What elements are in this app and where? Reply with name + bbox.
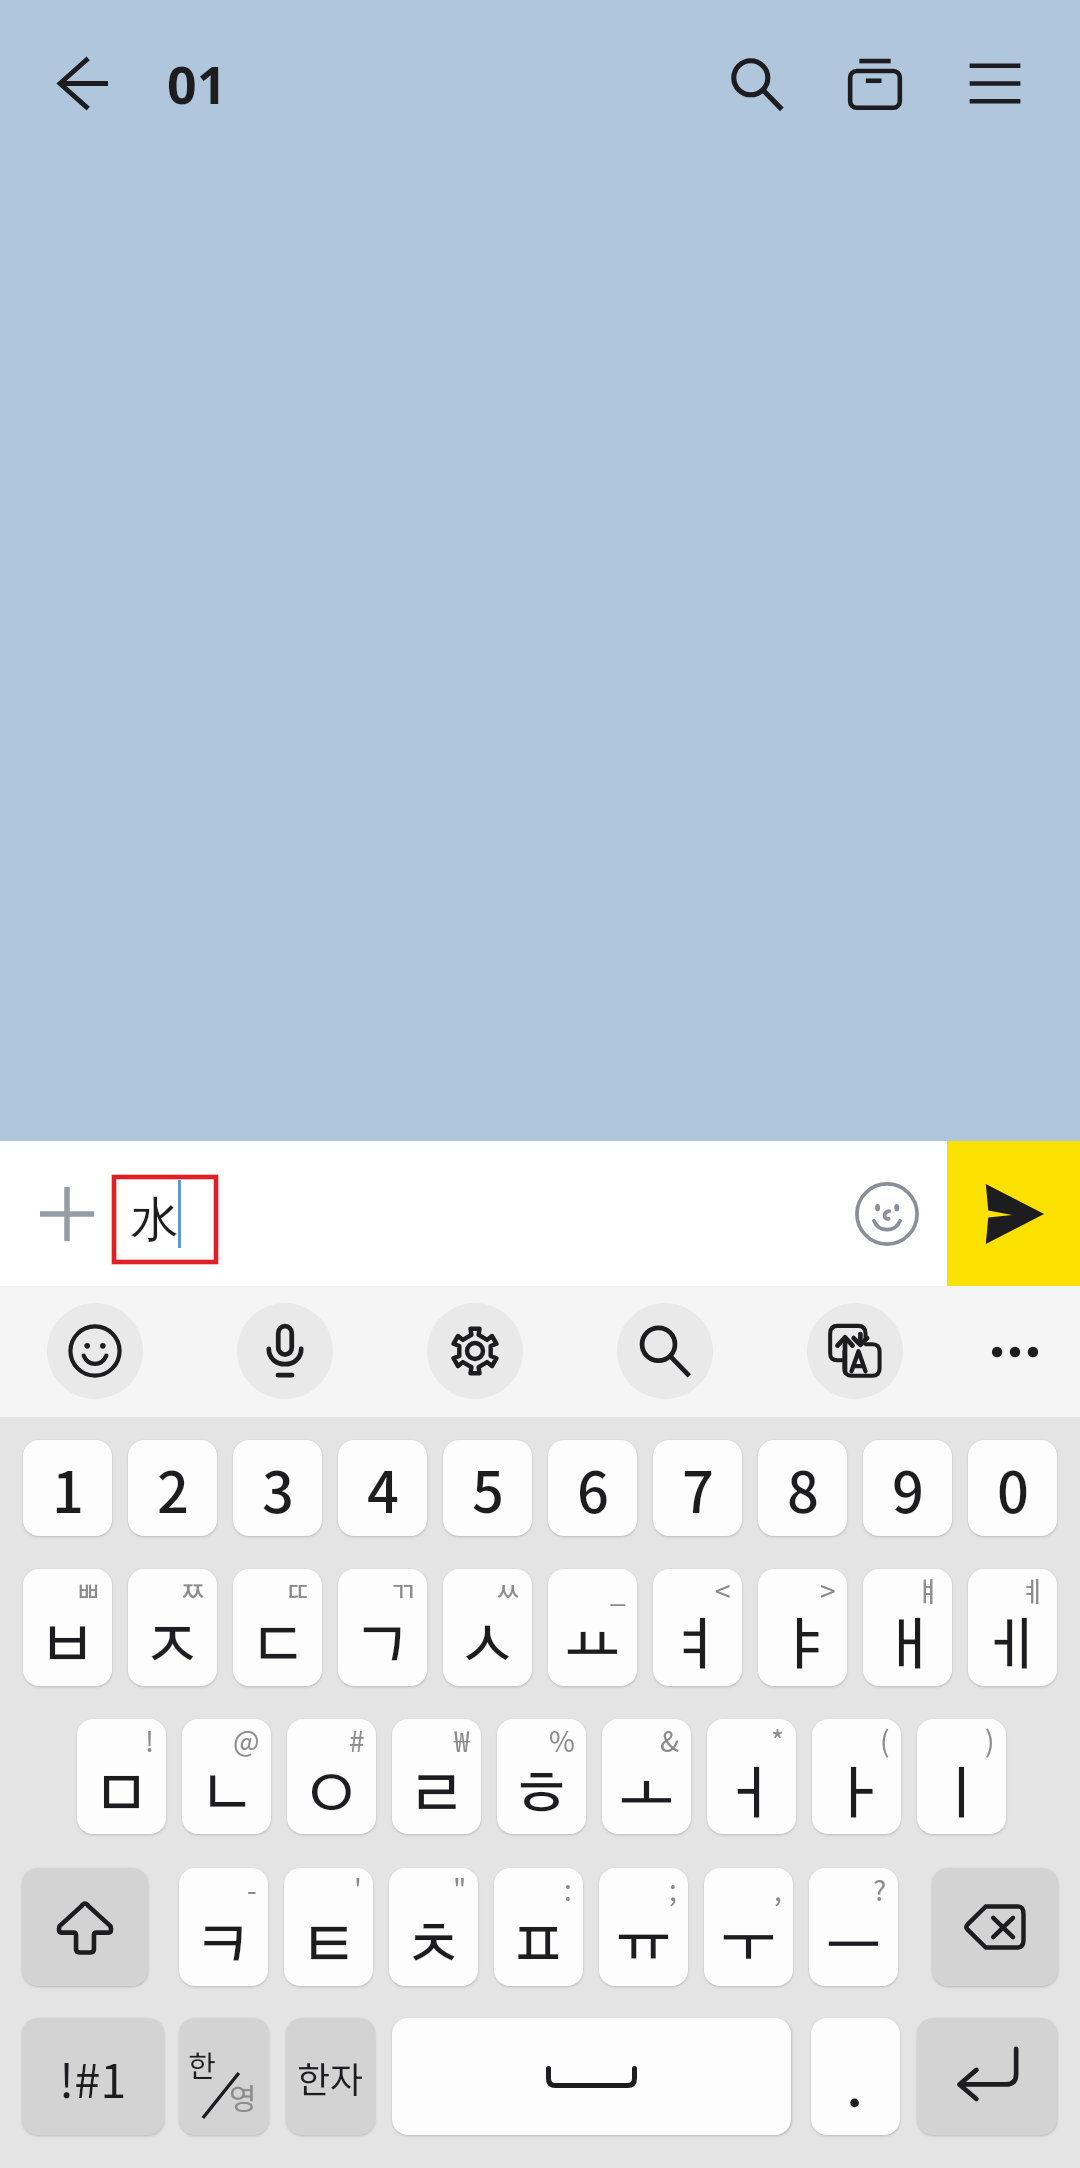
staticText: ㅎ: [513, 1768, 570, 1825]
staticText: ㅂ: [39, 1619, 96, 1676]
button[interactable]: Settings: [427, 1303, 523, 1399]
button[interactable]: More options: [967, 1304, 1063, 1400]
staticText: ㅋ: [195, 1919, 252, 1976]
button[interactable]: &: [602, 1719, 691, 1834]
button[interactable]: ₩: [392, 1719, 481, 1834]
button[interactable]: ': [284, 1868, 373, 1986]
button[interactable]: 9: [863, 1440, 952, 1536]
button[interactable]: Shift: [22, 1868, 148, 1986]
button[interactable]: _: [548, 1569, 637, 1686]
staticText: 한자: [297, 2051, 364, 2103]
staticText: ㅛ: [564, 1619, 621, 1676]
button[interactable]: #: [287, 1719, 376, 1834]
button[interactable]: Backspace: [932, 1868, 1058, 1986]
button[interactable]: ㅆ: [443, 1569, 532, 1686]
button[interactable]: Search: [617, 1303, 713, 1399]
button[interactable]: >: [758, 1569, 847, 1686]
staticText: ㄲ: [390, 1570, 416, 1611]
staticText: _: [610, 1570, 626, 1611]
staticText: ㄹ: [408, 1768, 465, 1825]
staticText: ㅣ: [933, 1768, 990, 1825]
button[interactable]: :: [494, 1868, 583, 1986]
button[interactable]: 5: [443, 1440, 532, 1536]
button[interactable]: Period: [811, 2018, 900, 2135]
staticText: ㄸ: [285, 1570, 311, 1611]
button[interactable]: 1: [23, 1440, 112, 1536]
staticText: #: [349, 1720, 365, 1761]
button[interactable]: Emoji: [829, 1156, 945, 1272]
button[interactable]: Korean / English: [179, 2018, 269, 2135]
button[interactable]: 8: [758, 1440, 847, 1536]
staticText: ㅡ: [825, 1919, 882, 1976]
staticText: ㅌ: [300, 1919, 357, 1976]
staticText: ㅓ: [723, 1768, 780, 1825]
button[interactable]: ㅃ: [23, 1569, 112, 1686]
staticText: 0: [997, 1448, 1029, 1529]
button[interactable]: 2: [128, 1440, 217, 1536]
staticText: ㅈ: [144, 1619, 201, 1676]
button[interactable]: ?: [809, 1868, 898, 1986]
button[interactable]: Space: [392, 2018, 791, 2135]
staticText: ㅖ: [1020, 1570, 1046, 1611]
button[interactable]: Send: [947, 1141, 1080, 1286]
button[interactable]: 3: [233, 1440, 322, 1536]
staticText: ?: [873, 1869, 887, 1910]
staticText: 7: [682, 1448, 714, 1529]
staticText: %: [549, 1720, 575, 1761]
staticText: ㅑ: [774, 1619, 831, 1676]
staticText: (: [880, 1720, 890, 1761]
staticText: ㅁ: [93, 1768, 150, 1825]
staticText: >: [820, 1570, 836, 1611]
button[interactable]: ㅖ: [968, 1569, 1057, 1686]
button[interactable]: ㅉ: [128, 1569, 217, 1686]
button[interactable]: Archive: [818, 27, 932, 141]
button[interactable]: *: [707, 1719, 796, 1834]
button[interactable]: Add attachment: [9, 1156, 125, 1272]
button[interactable]: !: [77, 1719, 166, 1834]
button[interactable]: 0: [968, 1440, 1057, 1536]
staticText: 水: [131, 1190, 179, 1250]
button[interactable]: -: [179, 1868, 268, 1986]
button[interactable]: Search: [700, 27, 814, 141]
staticText: 1: [52, 1448, 84, 1529]
staticText: ㅅ: [459, 1619, 516, 1676]
staticText: -: [247, 1869, 257, 1910]
button[interactable]: 6: [548, 1440, 637, 1536]
button[interactable]: ): [917, 1719, 1006, 1834]
button[interactable]: ;: [599, 1868, 688, 1986]
staticText: ㅒ: [915, 1570, 941, 1611]
button[interactable]: !#1: [22, 2018, 164, 2135]
staticText: ㅃ: [75, 1570, 101, 1611]
staticText: 8: [787, 1448, 819, 1529]
button[interactable]: <: [653, 1569, 742, 1686]
button[interactable]: 7: [653, 1440, 742, 1536]
button[interactable]: ㄸ: [233, 1569, 322, 1686]
staticText: ㄷ: [249, 1619, 306, 1676]
button[interactable]: ": [389, 1868, 478, 1986]
staticText: ": [453, 1869, 467, 1910]
button[interactable]: 4: [338, 1440, 427, 1536]
staticText: 01: [167, 48, 227, 119]
staticText: !#1: [59, 2043, 127, 2111]
staticText: ㅗ: [618, 1768, 675, 1825]
button[interactable]: ,: [704, 1868, 793, 1986]
button[interactable]: ㄲ: [338, 1569, 427, 1686]
staticText: :: [564, 1869, 572, 1910]
button[interactable]: Menu: [938, 26, 1052, 140]
button[interactable]: Back: [24, 24, 143, 143]
button[interactable]: %: [497, 1719, 586, 1834]
staticText: ㅊ: [405, 1919, 462, 1976]
staticText: ,: [774, 1869, 782, 1910]
button[interactable]: Enter: [917, 2018, 1057, 2135]
button[interactable]: Voice input: [237, 1303, 333, 1399]
button[interactable]: (: [812, 1719, 901, 1834]
staticText: 5: [472, 1448, 504, 1529]
button[interactable]: @: [182, 1719, 271, 1834]
staticText: 9: [892, 1448, 924, 1529]
button[interactable]: Emoji: [47, 1303, 143, 1399]
button[interactable]: 한자: [286, 2018, 375, 2135]
staticText: <: [715, 1570, 731, 1611]
staticText: ㅕ: [669, 1619, 726, 1676]
button[interactable]: Translate: [807, 1303, 903, 1399]
button[interactable]: ㅒ: [863, 1569, 952, 1686]
